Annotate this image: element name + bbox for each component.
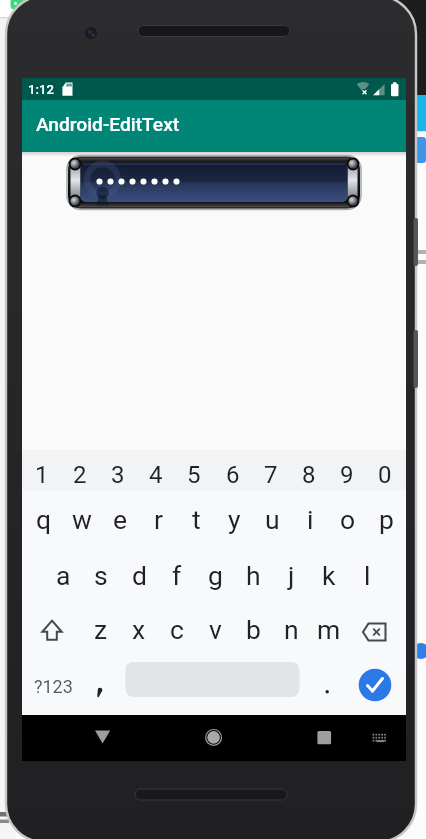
- staticText: n: [284, 614, 299, 645]
- button[interactable]: l: [348, 548, 386, 602]
- button[interactable]: g: [196, 548, 234, 602]
- staticText: 9: [340, 461, 354, 489]
- button[interactable]: 0: [366, 455, 404, 495]
- button[interactable]: j: [272, 548, 310, 602]
- staticText: v: [209, 614, 222, 645]
- button[interactable]: s: [82, 548, 120, 602]
- button[interactable]: 3: [99, 455, 137, 495]
- staticText: 5: [187, 461, 201, 489]
- button[interactable]: [313, 666, 343, 704]
- button[interactable]: ?123: [29, 666, 77, 706]
- staticText: d: [132, 560, 147, 591]
- staticText: i: [307, 504, 314, 535]
- staticText: c: [170, 614, 184, 645]
- button[interactable]: z: [83, 602, 119, 656]
- button[interactable]: p: [367, 492, 405, 546]
- button[interactable]: t: [177, 492, 215, 546]
- staticText: y: [228, 504, 241, 535]
- staticText: 4: [149, 461, 163, 489]
- button[interactable]: 6: [214, 455, 252, 495]
- button[interactable]: a: [44, 548, 82, 602]
- button[interactable]: v: [197, 602, 233, 656]
- button[interactable]: 2: [61, 455, 99, 495]
- button[interactable]: [358, 668, 392, 702]
- staticText: x: [132, 614, 146, 645]
- button[interactable]: [68, 156, 360, 209]
- button[interactable]: 1:12: [24, 81, 58, 97]
- button[interactable]: f: [158, 548, 196, 602]
- staticText: e: [113, 504, 128, 535]
- button[interactable]: 4: [137, 455, 175, 495]
- staticText: a: [56, 560, 71, 591]
- staticText: ?123: [34, 676, 73, 697]
- button[interactable]: 5: [175, 455, 213, 495]
- staticText: 0: [378, 461, 392, 489]
- button[interactable]: u: [253, 492, 291, 546]
- button[interactable]: m: [311, 602, 347, 656]
- staticText: 1: [35, 461, 49, 489]
- button[interactable]: [34, 604, 72, 656]
- button[interactable]: h: [234, 548, 272, 602]
- staticText: u: [265, 504, 280, 535]
- staticText: 1:12: [28, 82, 54, 97]
- staticText: o: [340, 504, 356, 535]
- button[interactable]: [356, 604, 400, 656]
- staticText: j: [288, 560, 295, 591]
- staticText: z: [94, 614, 108, 645]
- staticText: g: [208, 560, 223, 591]
- button[interactable]: [125, 662, 300, 698]
- staticText: 6: [226, 461, 240, 489]
- button[interactable]: d: [120, 548, 158, 602]
- button[interactable]: i: [291, 492, 329, 546]
- button[interactable]: y: [215, 492, 253, 546]
- button[interactable]: q: [25, 492, 63, 546]
- staticText: 8: [302, 461, 316, 489]
- staticText: 7: [264, 461, 278, 489]
- button[interactable]: k: [310, 548, 348, 602]
- staticText: w: [72, 504, 92, 535]
- button[interactable]: 7: [252, 455, 290, 495]
- staticText: m: [317, 614, 341, 645]
- staticText: b: [246, 614, 261, 645]
- button[interactable]: Android-EditText: [36, 111, 286, 138]
- button[interactable]: [370, 725, 394, 749]
- staticText: h: [246, 560, 261, 591]
- staticText: l: [364, 560, 371, 591]
- button[interactable]: [86, 666, 116, 704]
- staticText: q: [36, 504, 52, 535]
- staticText: 3: [111, 461, 125, 489]
- staticText: 2: [73, 461, 87, 489]
- staticText: Android-EditText: [36, 113, 180, 136]
- button[interactable]: 8: [290, 455, 328, 495]
- button[interactable]: c: [159, 602, 195, 656]
- staticText: p: [379, 504, 394, 535]
- button[interactable]: n: [273, 602, 309, 656]
- staticText: t: [192, 504, 201, 535]
- button[interactable]: [306, 719, 342, 755]
- button[interactable]: [196, 719, 232, 755]
- button[interactable]: e: [101, 492, 139, 546]
- button[interactable]: [85, 719, 121, 755]
- button[interactable]: 1: [23, 455, 61, 495]
- staticText: r: [154, 504, 163, 535]
- button[interactable]: 9: [328, 455, 366, 495]
- staticText: s: [94, 560, 108, 591]
- staticText: k: [322, 560, 336, 591]
- staticText: f: [172, 560, 182, 591]
- button[interactable]: r: [139, 492, 177, 546]
- button[interactable]: b: [235, 602, 271, 656]
- button[interactable]: x: [121, 602, 157, 656]
- button[interactable]: o: [329, 492, 367, 546]
- button[interactable]: w: [63, 492, 101, 546]
